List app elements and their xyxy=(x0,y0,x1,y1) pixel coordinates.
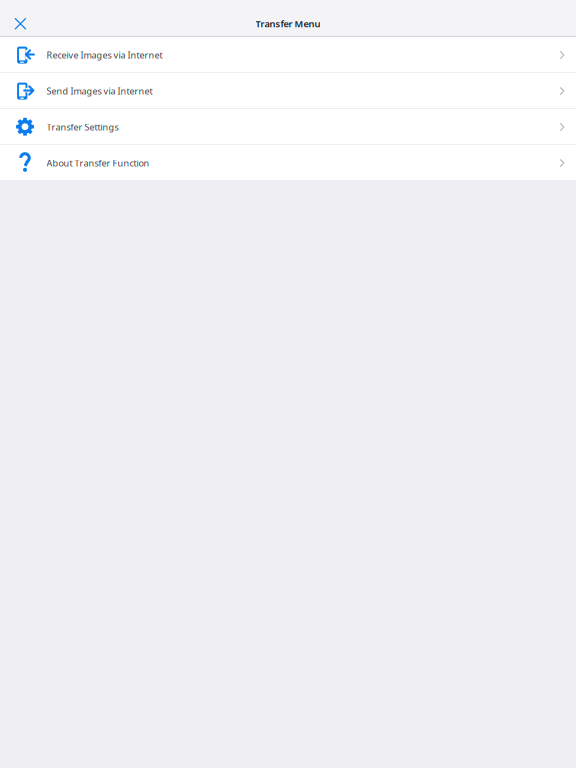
staticText: Transfer Settings xyxy=(47,121,119,133)
button[interactable]: Close xyxy=(7,11,33,37)
button[interactable]: Receive Images via Internet xyxy=(0,37,576,73)
button[interactable]: Transfer Settings xyxy=(0,109,576,145)
button[interactable]: About Transfer Function xyxy=(0,145,576,181)
staticText: Receive Images via Internet xyxy=(47,49,163,61)
button[interactable]: Send Images via Internet xyxy=(0,73,576,109)
staticText: Transfer Menu xyxy=(255,18,320,30)
staticText: Send Images via Internet xyxy=(47,85,153,97)
staticText: About Transfer Function xyxy=(47,157,150,169)
